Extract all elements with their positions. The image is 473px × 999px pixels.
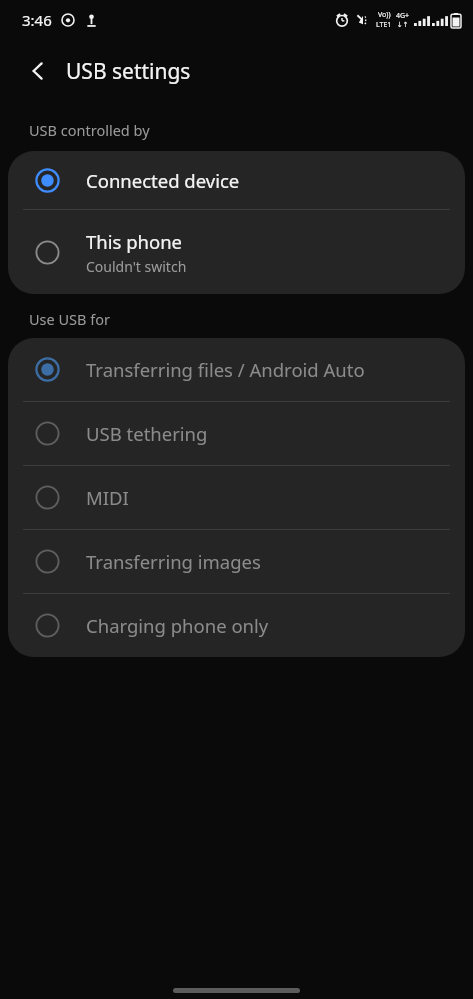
staticText: Use USB for xyxy=(29,309,110,329)
staticText: MIDI xyxy=(86,485,129,510)
staticText: ↓↑ xyxy=(397,21,409,29)
button[interactable]: Charging phone only xyxy=(8,594,465,657)
button[interactable]: MIDI xyxy=(8,466,465,529)
button[interactable]: Transferring files / Android Auto xyxy=(8,338,465,401)
button[interactable]: Back xyxy=(18,51,58,91)
staticText: Charging phone only xyxy=(86,613,269,638)
staticText: 3:46 xyxy=(22,10,52,30)
staticText: Vo)) xyxy=(378,10,391,20)
staticText: This phone xyxy=(86,229,183,254)
button[interactable]: This phone xyxy=(8,210,465,294)
staticText: Connected device xyxy=(86,168,240,193)
staticText: 4G+ xyxy=(396,11,410,21)
staticText: Transferring images xyxy=(86,549,261,574)
staticText: Couldn't switch xyxy=(86,257,187,276)
staticText: USB tethering xyxy=(86,421,208,446)
staticText: USB settings xyxy=(66,57,191,86)
staticText: Transferring files / Android Auto xyxy=(86,357,365,382)
button[interactable]: USB tethering xyxy=(8,402,465,465)
button[interactable]: Transferring images xyxy=(8,530,465,593)
button[interactable]: Connected device xyxy=(8,151,465,209)
staticText: LTE1 xyxy=(376,20,392,30)
staticText: USB controlled by xyxy=(29,120,150,140)
